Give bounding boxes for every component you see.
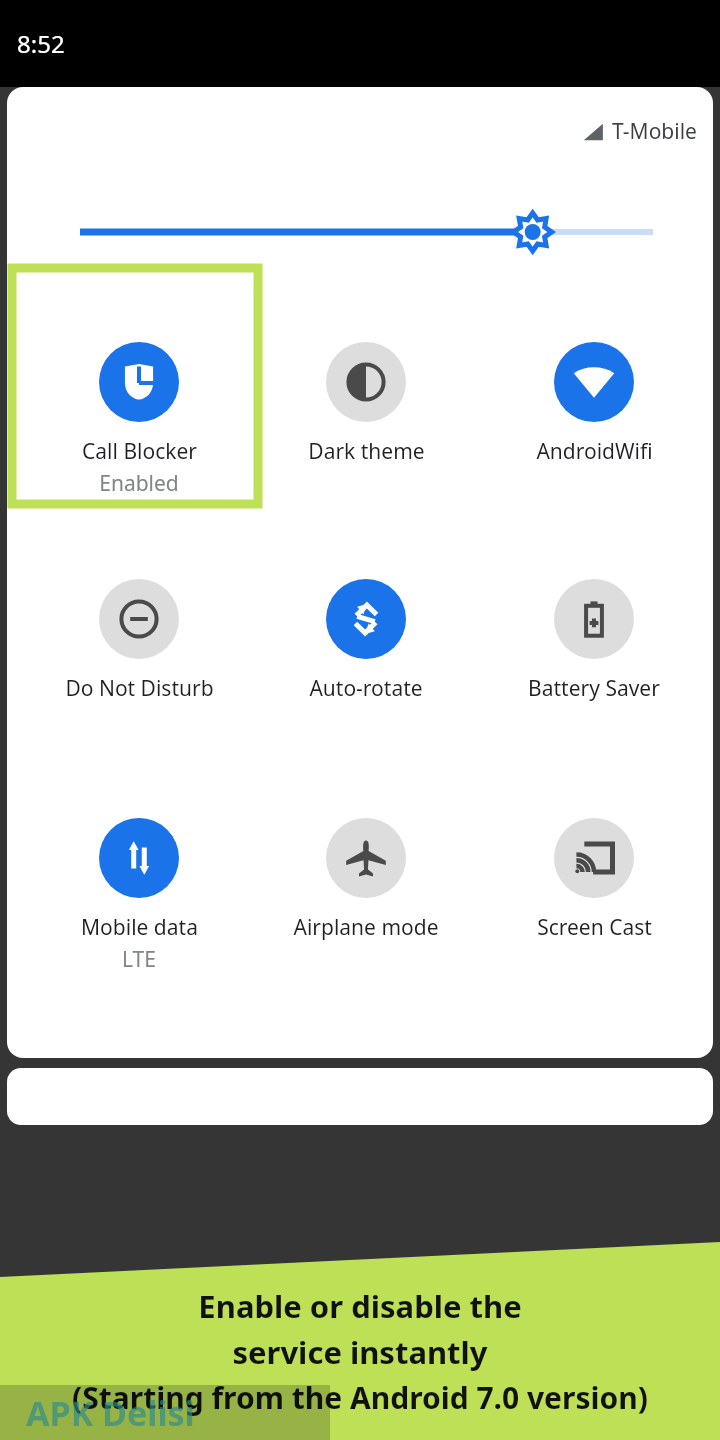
staticText: Airplane mode bbox=[293, 913, 439, 942]
staticText: Enable or disable the bbox=[198, 1285, 522, 1327]
button[interactable]: Auto-rotate bbox=[270, 579, 462, 703]
staticText: service instantly bbox=[232, 1331, 488, 1373]
button[interactable]: Battery Saver bbox=[498, 579, 690, 703]
staticText: Enabled bbox=[99, 469, 179, 498]
staticText: APK Delisi bbox=[26, 1390, 195, 1436]
staticText: LTE bbox=[122, 945, 156, 974]
button[interactable]: Brightness bbox=[73, 212, 653, 252]
staticText: (Starting from the Android 7.0 version) bbox=[72, 1377, 648, 1418]
button[interactable]: Do Not Disturb bbox=[43, 579, 235, 703]
button[interactable]: Mobile data bbox=[43, 818, 235, 974]
staticText: Do Not Disturb bbox=[65, 674, 214, 703]
button[interactable]: Screen Cast bbox=[498, 818, 690, 942]
staticText: Battery Saver bbox=[528, 674, 660, 703]
button[interactable]: Airplane mode bbox=[270, 818, 462, 942]
staticText: 8:52 bbox=[17, 27, 65, 60]
staticText: Auto-rotate bbox=[309, 674, 423, 703]
staticText: Screen Cast bbox=[537, 913, 652, 942]
button[interactable]: Dark theme bbox=[270, 342, 462, 466]
button[interactable]: AndroidWifi bbox=[498, 342, 690, 466]
button[interactable]: Call Blocker bbox=[43, 342, 235, 498]
staticText: Mobile data bbox=[81, 913, 198, 942]
staticText: Dark theme bbox=[308, 437, 425, 466]
staticText: T-Mobile bbox=[612, 117, 697, 146]
button[interactable] bbox=[7, 1068, 713, 1125]
staticText: AndroidWifi bbox=[536, 437, 653, 466]
staticText: Call Blocker bbox=[82, 437, 197, 466]
